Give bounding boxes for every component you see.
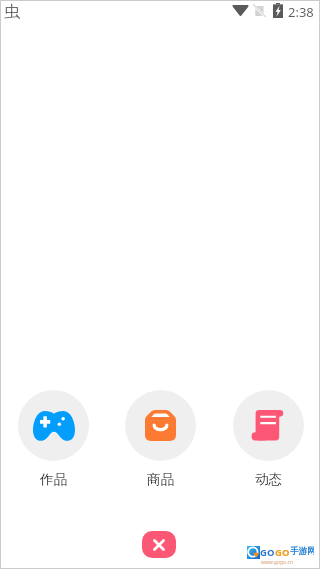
staticText: 手游网: [290, 546, 314, 557]
staticText: 作品: [40, 471, 67, 488]
staticText: GO: [260, 546, 275, 559]
staticText: www.gogo.cn: [261, 559, 293, 566]
button[interactable]: 商品: [120, 390, 200, 488]
button[interactable]: 动态: [228, 390, 308, 488]
staticText: 虫: [4, 2, 20, 22]
staticText: 2:38: [288, 3, 314, 21]
button[interactable]: Close: [142, 531, 176, 558]
staticText: GO: [275, 546, 290, 559]
staticText: 商品: [147, 471, 174, 488]
staticText: 动态: [255, 471, 282, 488]
button[interactable]: 作品: [13, 390, 93, 488]
